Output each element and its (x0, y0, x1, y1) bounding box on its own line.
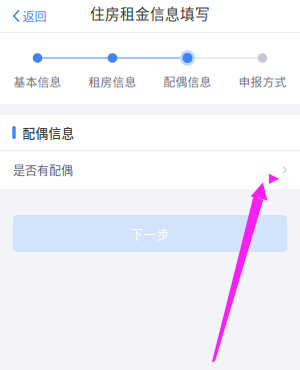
staticText: 配偶信息 (22, 123, 74, 142)
button[interactable]: 是否有配偶 (0, 151, 300, 189)
staticText: 配偶信息 (163, 73, 211, 90)
staticText: 住房租金信息填写 (90, 2, 210, 24)
staticText: 租房信息 (88, 73, 136, 90)
staticText: 是否有配偶 (13, 161, 73, 179)
button[interactable]: 下一步 (13, 215, 287, 252)
staticText: 基本信息 (13, 73, 61, 90)
staticText: 申报方式 (238, 73, 286, 90)
staticText: 下一步 (130, 224, 169, 243)
button[interactable]: 返回 (0, 0, 57, 32)
staticText: 返回 (23, 7, 47, 25)
